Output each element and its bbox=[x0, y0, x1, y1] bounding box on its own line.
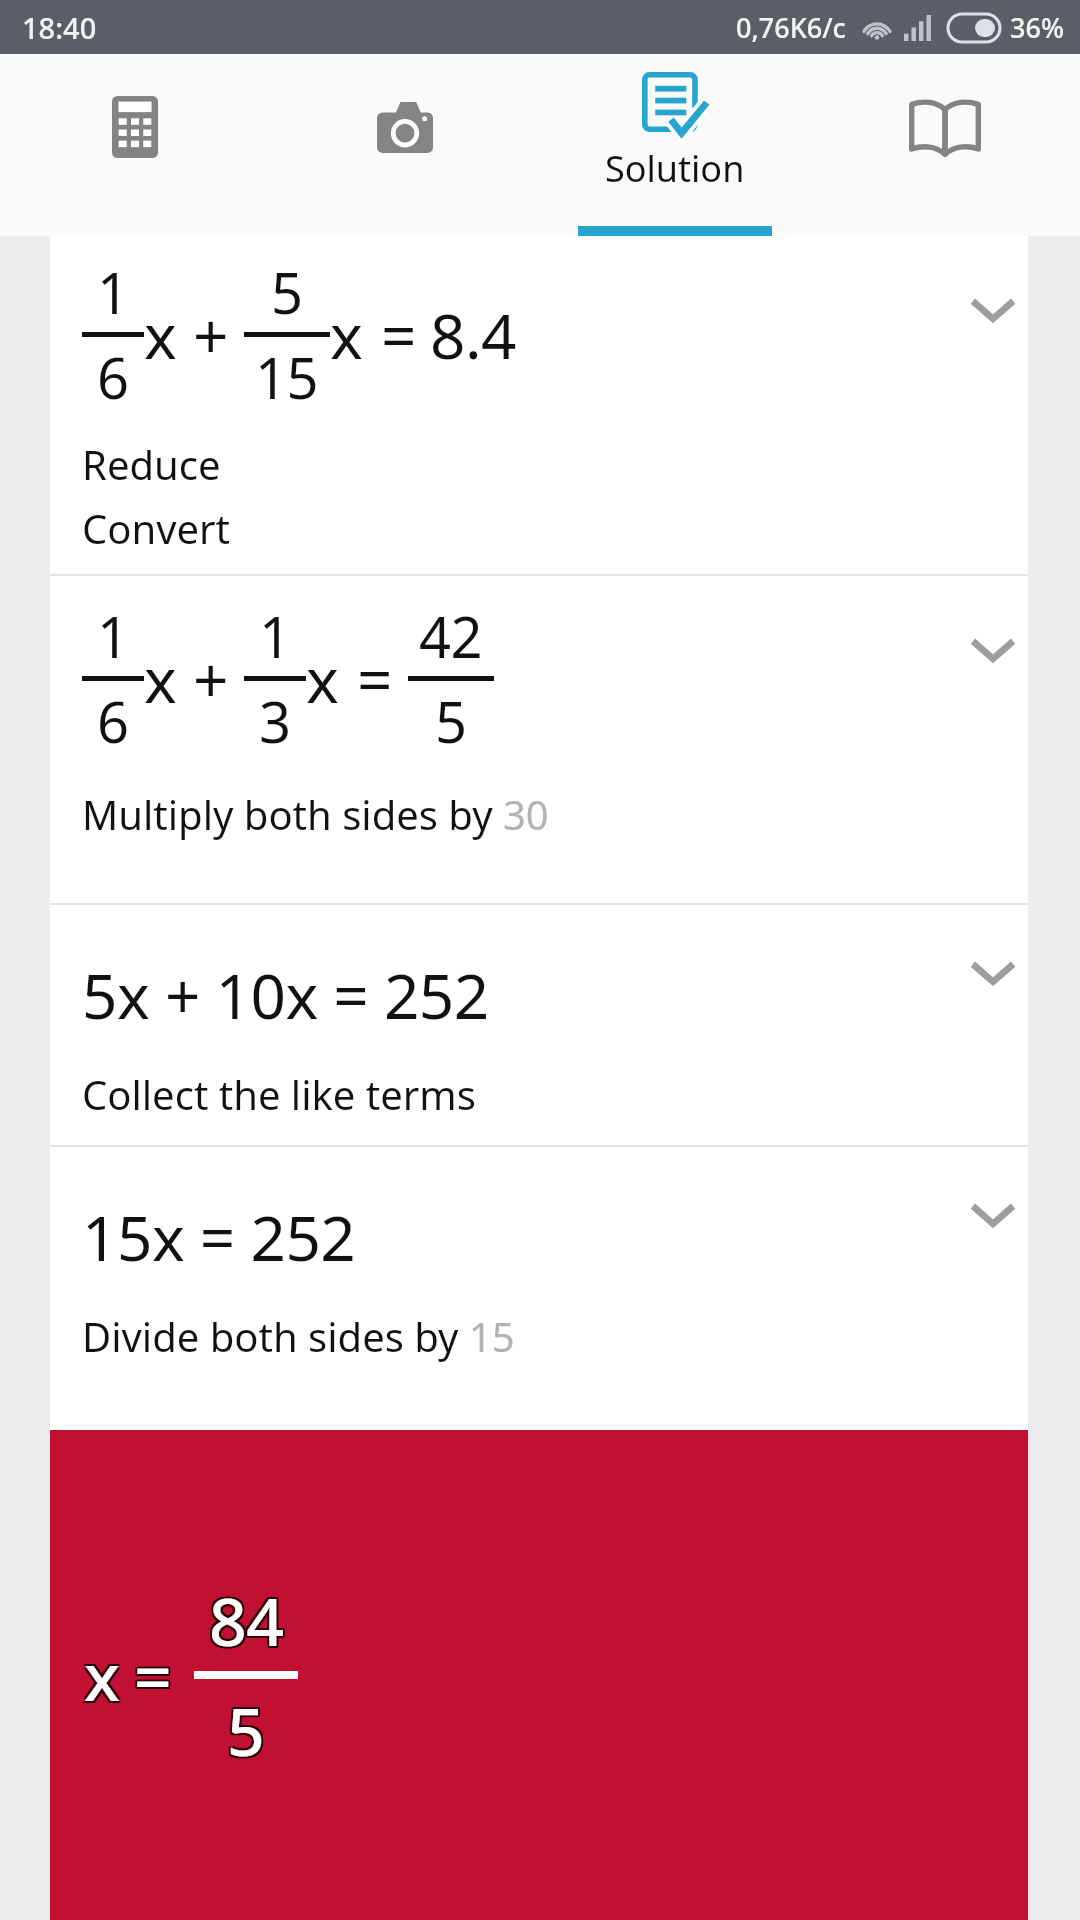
button[interactable]: Expand step bbox=[958, 1181, 1028, 1251]
staticText: 5x + 10x = 252 bbox=[82, 953, 489, 1037]
button[interactable]: Solution bbox=[540, 54, 810, 236]
staticText: = bbox=[134, 1630, 172, 1720]
staticText: 1 bbox=[259, 598, 291, 674]
button[interactable]: Expand step bbox=[958, 616, 1028, 686]
staticText: x bbox=[84, 1630, 120, 1720]
staticText: = bbox=[136, 1632, 174, 1722]
button[interactable]: Glossary bbox=[810, 54, 1080, 236]
staticText: 5 bbox=[229, 1687, 267, 1777]
staticText: 1 bbox=[97, 598, 129, 674]
staticText: 84 bbox=[211, 1573, 286, 1663]
button[interactable]: Calculator bbox=[0, 54, 270, 236]
staticText: + bbox=[193, 293, 228, 377]
button[interactable]: Camera bbox=[270, 54, 540, 236]
staticText: 15x = 252 bbox=[82, 1195, 356, 1279]
staticText: = bbox=[132, 1628, 170, 1718]
staticText: Convert bbox=[82, 501, 231, 555]
button[interactable]: Expand step bbox=[958, 276, 1028, 346]
staticText: 5 bbox=[225, 1687, 263, 1777]
button[interactable]: 1 bbox=[50, 576, 1028, 903]
staticText: 1 bbox=[97, 254, 129, 330]
staticText: 5 bbox=[271, 254, 303, 330]
button[interactable]: 5x + 10x = 252 bbox=[50, 905, 1028, 1145]
staticText: 0,76K6/c bbox=[736, 9, 846, 46]
staticText: 6 bbox=[97, 683, 129, 759]
staticText: x bbox=[86, 1628, 122, 1718]
staticText: 42 bbox=[419, 598, 483, 674]
button[interactable]: 1 bbox=[50, 236, 1028, 574]
staticText: Multiply both sides by 30 bbox=[82, 787, 549, 841]
staticText: Solution bbox=[605, 144, 745, 193]
staticText: 5 bbox=[227, 1685, 265, 1775]
staticText: Divide both sides by 15 bbox=[82, 1309, 515, 1363]
staticText: x bbox=[144, 293, 177, 377]
staticText: Reduce bbox=[82, 437, 221, 491]
staticText: x bbox=[144, 637, 177, 721]
staticText: 84 bbox=[211, 1577, 286, 1667]
staticText: 3 bbox=[259, 683, 291, 759]
staticText: = bbox=[357, 637, 392, 721]
staticText: x bbox=[86, 1632, 122, 1722]
staticText: 5 bbox=[225, 1683, 263, 1773]
staticText: 18:40 bbox=[22, 8, 97, 47]
button[interactable]: 15x = 252 bbox=[50, 1147, 1028, 1430]
staticText: 5 bbox=[229, 1683, 267, 1773]
staticText: x bbox=[306, 637, 339, 721]
staticText: = bbox=[132, 1632, 170, 1722]
staticText: x bbox=[82, 1632, 118, 1722]
staticText: Collect the like terms bbox=[82, 1067, 476, 1121]
staticText: 5 bbox=[435, 683, 467, 759]
button[interactable]: Expand step bbox=[958, 939, 1028, 1009]
staticText: + bbox=[193, 637, 228, 721]
staticText: 84 bbox=[207, 1573, 282, 1663]
staticText: 6 bbox=[97, 339, 129, 415]
staticText: 84 bbox=[207, 1577, 282, 1667]
staticText: 84 bbox=[209, 1575, 284, 1665]
staticText: x bbox=[330, 293, 363, 377]
staticText: 8.4 bbox=[430, 293, 517, 377]
staticText: 36% bbox=[1010, 9, 1064, 46]
staticText: 15 bbox=[255, 339, 319, 415]
staticText: = bbox=[381, 293, 416, 377]
button[interactable]: x bbox=[50, 1430, 1028, 1920]
staticText: x bbox=[82, 1628, 118, 1718]
staticText: = bbox=[136, 1628, 174, 1718]
